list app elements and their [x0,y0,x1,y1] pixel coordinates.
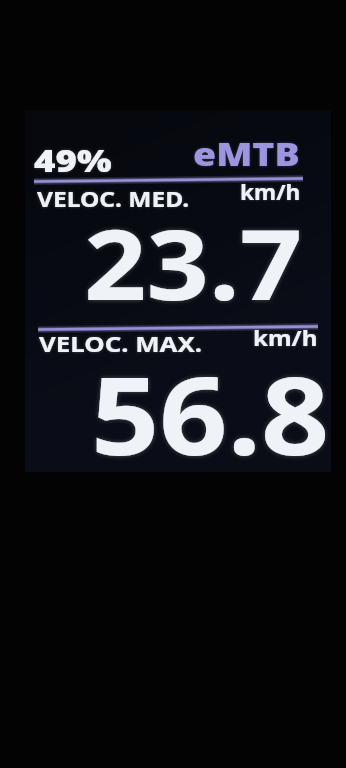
staticText: km/h [240,176,301,206]
staticText: VELOC. MED. [37,183,190,213]
staticText: 56.8 [91,340,330,486]
staticText: eMTB [193,132,301,176]
button[interactable]: VELOC. MAX. [25,326,331,472]
staticText: km/h [253,322,318,352]
staticText: VELOC. MAX. [39,328,202,358]
staticText: 49% [34,140,112,181]
button[interactable]: VELOC. MED. [25,178,331,326]
staticText: 23.7 [84,196,302,328]
button[interactable]: Assist mode eMTB [185,128,336,178]
button[interactable]: Battery 49 percent [25,132,175,178]
